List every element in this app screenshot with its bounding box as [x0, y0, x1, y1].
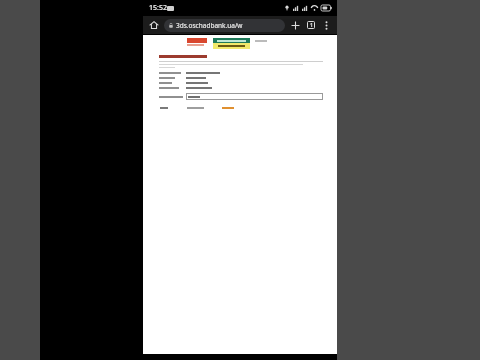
- button[interactable]: Help: [221, 106, 235, 110]
- button[interactable]: 3ds.oschadbank.ua/w: [164, 19, 285, 32]
- button[interactable]: [186, 93, 323, 100]
- button[interactable]: Cancel: [159, 106, 169, 110]
- staticText: 15:52: [149, 3, 167, 13]
- button[interactable]: Submit: [186, 106, 205, 110]
- button[interactable]: Switch tabs: [304, 18, 318, 32]
- button[interactable]: More options: [319, 18, 333, 32]
- staticText: 3ds.oschadbank.ua/w: [176, 21, 243, 30]
- button[interactable]: Home: [147, 18, 161, 32]
- button[interactable]: New tab: [288, 18, 302, 32]
- staticText: 1: [310, 22, 313, 29]
